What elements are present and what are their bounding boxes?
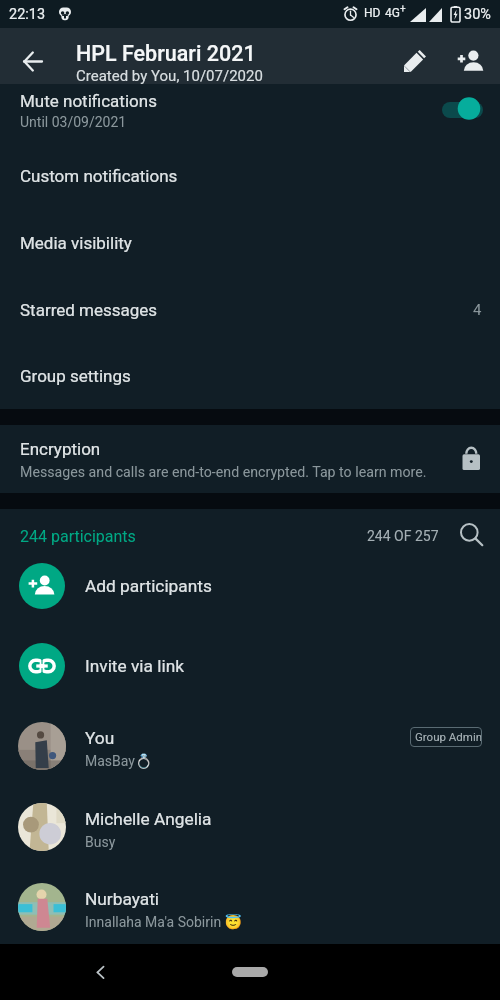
button[interactable]: Nurbayati xyxy=(0,867,500,947)
staticText: You xyxy=(85,728,115,748)
button[interactable] xyxy=(0,343,500,409)
staticText: Starred messages xyxy=(20,300,158,320)
staticText: Innallaha Ma'a Sobirin 😇 xyxy=(85,914,243,930)
button[interactable] xyxy=(0,209,500,276)
staticText: 4 xyxy=(473,301,482,319)
button[interactable] xyxy=(0,143,500,209)
staticText: Encryption xyxy=(20,439,101,459)
staticText: Media visibility xyxy=(20,233,132,253)
staticText: Messages and calls are end-to-end encryp… xyxy=(20,464,427,481)
staticText: Add participants xyxy=(85,576,212,596)
staticText: HD xyxy=(364,6,381,20)
button[interactable]: Add participants xyxy=(0,546,500,626)
button[interactable] xyxy=(0,425,500,493)
staticText: HPL Februari 2021 xyxy=(76,41,256,66)
button[interactable]: Home xyxy=(232,967,268,977)
staticText: Michelle Angelia xyxy=(85,809,212,829)
button[interactable]: Back xyxy=(80,951,122,993)
staticText: Created by You, 10/07/2020 xyxy=(76,67,263,85)
staticText: Busy xyxy=(85,834,116,850)
staticText: Invite via link xyxy=(85,656,184,676)
staticText: 4G xyxy=(385,6,400,20)
staticText: Mute notifications xyxy=(20,91,157,111)
staticText: 22:13 xyxy=(9,6,46,23)
button[interactable]: You xyxy=(0,706,500,786)
button[interactable]: Group Admin xyxy=(410,727,482,747)
button[interactable]: Edit group name xyxy=(393,34,437,78)
staticText: Group settings xyxy=(20,366,131,386)
button[interactable]: Invite via link xyxy=(0,626,500,706)
staticText: Nurbayati xyxy=(85,889,160,909)
button[interactable]: Search participants xyxy=(448,510,492,554)
button[interactable]: Mute notifications toggle xyxy=(440,95,486,123)
staticText: + xyxy=(400,3,406,15)
staticText: Group Admin xyxy=(415,730,483,743)
staticText: 244 OF 257 xyxy=(367,528,439,544)
button[interactable]: Michelle Angelia xyxy=(0,787,500,867)
button[interactable]: Back xyxy=(10,39,54,83)
button[interactable]: Add participant xyxy=(450,34,494,78)
staticText: Until 03/09/2021 xyxy=(20,114,127,130)
button[interactable] xyxy=(0,84,500,143)
staticText: Custom notifications xyxy=(20,166,178,186)
button[interactable] xyxy=(0,276,500,343)
staticText: 244 participants xyxy=(20,527,136,546)
staticText: 30% xyxy=(464,6,491,23)
staticText: MasBay💍 xyxy=(85,753,153,769)
